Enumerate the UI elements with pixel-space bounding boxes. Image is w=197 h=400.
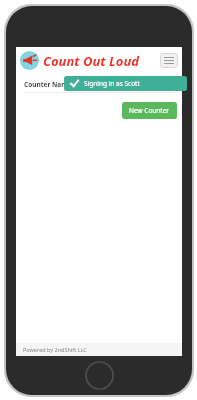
button[interactable]: Menu bbox=[160, 53, 178, 68]
staticText: New Counter bbox=[129, 106, 170, 115]
button[interactable]: Type bbox=[78, 78, 176, 92]
staticText: Type bbox=[78, 81, 93, 90]
staticText: Counter Name bbox=[24, 80, 72, 89]
staticText: Signing in as Scott bbox=[84, 79, 140, 88]
button[interactable]: Signing in as Scott bbox=[64, 76, 187, 91]
staticText: Powered by 2ndShift LLC bbox=[23, 346, 87, 353]
button[interactable]: New Counter bbox=[122, 102, 177, 119]
staticText: Count Out Loud bbox=[43, 52, 139, 70]
